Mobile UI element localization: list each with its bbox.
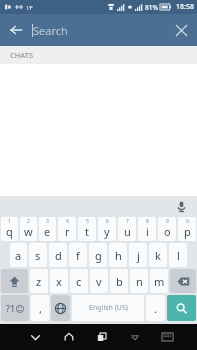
staticText: o [164,224,171,239]
staticText: 7 [126,218,129,225]
staticText: a [15,248,22,263]
staticText: c [76,274,82,289]
staticText: t [85,224,89,239]
staticText: l [177,248,180,263]
staticText: i [146,224,149,239]
button[interactable]: 2 [20,217,37,241]
staticText: 9 [166,218,169,225]
staticText: w [24,224,33,239]
staticText: m [154,274,165,289]
staticText: 5 [86,218,89,225]
staticText: u [124,224,131,239]
staticText: ?1☺ [6,302,25,314]
staticText: b [116,274,123,289]
button[interactable]: f [69,243,87,267]
staticText: h [115,248,122,263]
button[interactable]: English (US) [72,295,144,321]
staticText: x [56,274,62,289]
button[interactable]: 0 [178,217,196,241]
button[interactable]: 9 [158,217,176,241]
staticText: z [36,274,42,289]
button[interactable]: 4 [58,217,76,241]
button[interactable]: 5 [78,217,96,241]
button[interactable]: Hide keyboard [118,324,151,350]
button[interactable]: Home [52,324,85,350]
staticText: 4 [66,218,69,225]
button[interactable]: m [150,269,168,293]
staticText: f [76,248,80,263]
button[interactable]: s [29,243,47,267]
staticText: . [154,301,157,316]
button[interactable]: Shift [1,269,28,293]
staticText: , [39,301,42,316]
button[interactable]: d [49,243,67,267]
staticText: 6 [106,218,109,225]
button[interactable]: z [30,269,48,293]
staticText: k [155,248,161,263]
button[interactable]: b [110,269,128,293]
button[interactable]: 8 [138,217,156,241]
staticText: j [137,248,140,263]
staticText: 0 [186,218,189,225]
button[interactable]: 1 [1,217,18,241]
staticText: CHATS [10,50,34,60]
staticText: y [104,224,110,239]
staticText: 18:58 [176,2,194,12]
staticText: 1 [8,218,11,225]
button[interactable]: . [146,295,165,321]
staticText: v [96,274,102,289]
button[interactable]: a [10,243,27,267]
staticText: d [55,248,62,263]
button[interactable]: ?1☺ [1,295,29,321]
button[interactable]: Recent apps [85,324,118,350]
button[interactable]: n [130,269,148,293]
staticText: ۱۳ [26,4,33,11]
button[interactable]: Language [51,295,70,321]
staticText: s [35,248,41,263]
button[interactable]: x [50,269,68,293]
staticText: q [6,224,13,239]
staticText: n [136,274,143,289]
button[interactable]: k [149,243,167,267]
staticText: 8 [146,218,149,225]
button[interactable]: Search [167,295,196,321]
staticText: 81% [145,3,158,12]
staticText: 3 [46,218,49,225]
button[interactable]: h [109,243,127,267]
staticText: e [44,224,51,239]
staticText: r [65,224,70,239]
button[interactable]: Switch keyboard [151,324,184,350]
button[interactable]: c [70,269,88,293]
button[interactable]: 7 [118,217,136,241]
button[interactable]: , [31,295,49,321]
button[interactable]: Search [32,14,165,46]
button[interactable]: Back [0,14,32,46]
staticText: Search [33,23,68,38]
button[interactable]: g [89,243,107,267]
button[interactable]: v [90,269,108,293]
button[interactable]: Back [19,324,52,350]
button[interactable]: j [129,243,147,267]
button[interactable]: 6 [98,217,116,241]
staticText: English (US) [89,303,128,313]
button[interactable]: 3 [39,217,56,241]
button[interactable]: Clear [165,14,197,46]
staticText: p [184,224,191,239]
staticText: g [95,248,102,263]
button[interactable]: l [169,243,187,267]
button[interactable]: Voice input [173,198,189,214]
staticText: 2 [27,218,30,225]
button[interactable]: Backspace [170,269,196,293]
